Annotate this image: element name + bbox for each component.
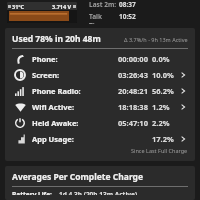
staticText: 3.714 V bbox=[52, 3, 72, 10]
staticText: 1d 4.3h (20h 13m Active) bbox=[59, 190, 138, 195]
staticText: Δ 3.7%/h - 9h 13m Active bbox=[124, 36, 188, 43]
staticText: 00:00:00 bbox=[118, 54, 148, 64]
button[interactable]: Battery status bbox=[7, 2, 77, 23]
staticText: 17.2% bbox=[152, 134, 174, 144]
staticText: 03:26:43 bbox=[118, 70, 148, 80]
staticText: Since Last Full Charge bbox=[131, 147, 188, 154]
staticText: Used 78% in 20h 48m bbox=[12, 33, 101, 45]
staticText: Last 2m: bbox=[89, 0, 119, 9]
button[interactable]: App Usage: bbox=[12, 131, 188, 147]
staticText: 2.2% bbox=[152, 118, 170, 128]
staticText: 18:18:38 bbox=[118, 102, 148, 112]
staticText: 56.2% bbox=[152, 86, 174, 96]
button[interactable]: Phone: bbox=[12, 51, 188, 67]
staticText: Phone: bbox=[32, 54, 118, 64]
staticText: 08:37 bbox=[119, 0, 136, 9]
button[interactable]: Held Awake: bbox=[12, 115, 188, 131]
button[interactable]: Wifi Active: bbox=[12, 99, 188, 115]
staticText: App Usage: bbox=[32, 134, 118, 144]
staticText: 1.2% bbox=[152, 102, 170, 112]
button[interactable]: Phone Radio: bbox=[12, 83, 188, 99]
staticText: 0.0% bbox=[152, 54, 170, 64]
staticText: Talk Time: bbox=[89, 12, 119, 24]
staticText: 10:52 bbox=[119, 12, 136, 21]
staticText: Held Awake: bbox=[32, 118, 118, 128]
staticText: 05:47:10 bbox=[118, 118, 148, 128]
staticText: Battery Life: bbox=[12, 190, 59, 195]
staticText: 20:48:21 bbox=[118, 86, 148, 96]
staticText: Averages Per Complete Charge bbox=[12, 171, 144, 183]
staticText: Screen: bbox=[32, 70, 118, 80]
staticText: Wifi Active: bbox=[32, 102, 118, 112]
staticText: 10.0% bbox=[152, 70, 174, 80]
staticText: Phone Radio: bbox=[32, 86, 118, 96]
staticText: 31°C bbox=[12, 3, 25, 10]
button[interactable]: Screen: bbox=[12, 67, 188, 83]
